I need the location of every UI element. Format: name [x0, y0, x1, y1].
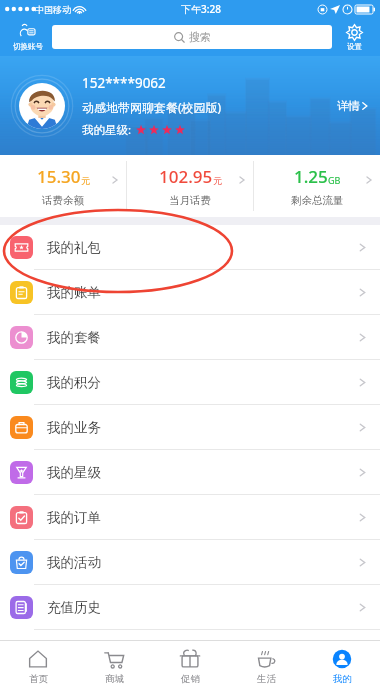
button[interactable]: 102.95	[127, 155, 253, 217]
staticText: 元	[213, 175, 222, 186]
staticText: 中国移动	[35, 4, 71, 15]
staticText: 促销	[181, 673, 200, 685]
button[interactable]: 详情	[337, 99, 370, 113]
button[interactable]: 首页	[0, 641, 76, 691]
button[interactable]: 15.30	[0, 155, 126, 217]
staticText: 动感地带网聊套餐(校园版)	[82, 99, 222, 115]
button[interactable]: 生活	[228, 641, 304, 691]
staticText: 我的星级:	[82, 122, 132, 138]
staticText: 102.95	[159, 165, 213, 188]
staticText: 我的礼包	[47, 239, 101, 256]
staticText: 152****9062	[82, 74, 166, 92]
staticText: 切换账号	[13, 42, 43, 51]
button[interactable]: 我的业务	[0, 405, 380, 449]
staticText: 元	[81, 175, 90, 186]
button[interactable]: 促销	[152, 641, 228, 691]
button[interactable]: 我的活动	[0, 540, 380, 584]
button[interactable]: 商城	[76, 641, 152, 691]
staticText: 我的套餐	[47, 329, 101, 346]
button[interactable]: 充值历史	[0, 585, 380, 629]
staticText: 设置	[347, 42, 362, 51]
button[interactable]: 切换账号	[4, 18, 52, 56]
staticText: 下午3:28	[181, 2, 221, 16]
button[interactable]: 搜索	[52, 25, 332, 49]
staticText: 15.30	[37, 165, 81, 188]
button[interactable]: 我的套餐	[0, 315, 380, 359]
button[interactable]: 我的礼包	[0, 225, 380, 269]
staticText: 生活	[257, 673, 276, 685]
button[interactable]: 头像	[19, 83, 65, 129]
staticText: 详情	[337, 99, 360, 113]
staticText: 我的订单	[47, 509, 101, 526]
staticText: 我的账单	[47, 284, 101, 301]
staticText: 我的业务	[47, 419, 101, 436]
staticText: GB	[328, 174, 341, 186]
staticText: 我的积分	[47, 374, 101, 391]
staticText: 充值历史	[47, 599, 101, 616]
staticText: 我的	[333, 673, 352, 685]
staticText: 我的活动	[47, 554, 101, 571]
staticText: 1.25	[294, 165, 328, 188]
button[interactable]: 设置	[332, 18, 376, 56]
staticText: 搜索	[189, 30, 211, 44]
button[interactable]: 我的积分	[0, 360, 380, 404]
staticText: 话费余额	[42, 194, 84, 207]
button[interactable]: 我的星级	[0, 450, 380, 494]
staticText: 商城	[105, 673, 124, 685]
button[interactable]: 我的订单	[0, 495, 380, 539]
button[interactable]: 我的	[304, 641, 380, 691]
staticText: 首页	[29, 673, 48, 685]
button[interactable]: 1.25	[254, 155, 380, 217]
staticText: 当月话费	[169, 194, 211, 207]
staticText: 剩余总流量	[291, 194, 344, 207]
staticText: 我的星级	[47, 464, 101, 481]
button[interactable]: 我的账单	[0, 270, 380, 314]
